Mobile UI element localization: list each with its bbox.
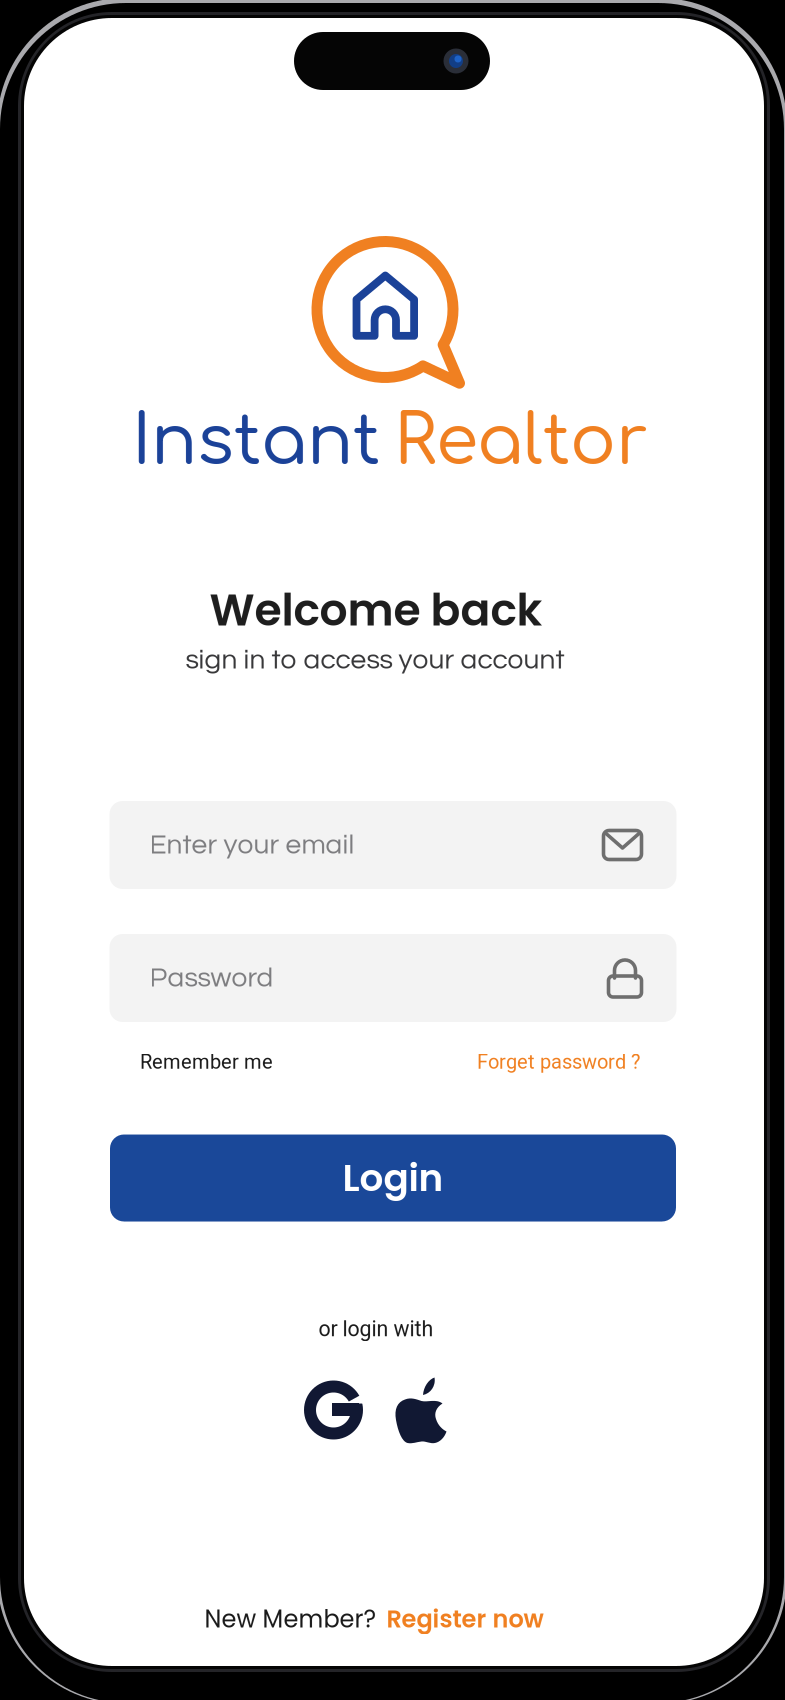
- staticText: New Member?: [204, 1602, 376, 1636]
- button[interactable]: Remember me: [140, 1044, 273, 1080]
- staticText: Realtor: [394, 404, 648, 480]
- staticText: Welcome back: [209, 579, 542, 641]
- staticText: Login: [342, 1152, 443, 1204]
- button[interactable]: Register now: [386, 1602, 543, 1636]
- button[interactable]: Forget password ?: [477, 1044, 640, 1080]
- staticText: Enter your email: [149, 831, 354, 859]
- staticText: Password: [149, 964, 273, 992]
- button[interactable]: Login: [110, 1134, 676, 1221]
- staticText: Forget password ?: [477, 1050, 640, 1074]
- staticText: sign in to access your account: [185, 646, 564, 674]
- staticText: Remember me: [140, 1050, 273, 1074]
- staticText: Instant: [132, 404, 380, 480]
- button[interactable]: Sign in with Apple: [394, 1376, 450, 1444]
- button[interactable]: Sign in with Google: [304, 1377, 364, 1442]
- staticText: Register now: [386, 1602, 543, 1636]
- staticText: or login with: [318, 1316, 433, 1341]
